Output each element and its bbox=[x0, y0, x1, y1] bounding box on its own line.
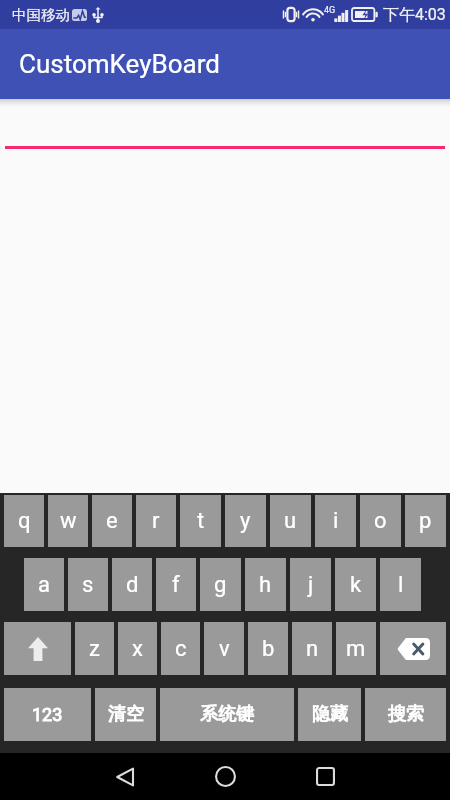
staticText: 下午4:03 bbox=[383, 5, 446, 25]
staticText: 隐藏 bbox=[312, 703, 348, 726]
staticText: s bbox=[82, 572, 94, 598]
staticText: t bbox=[197, 508, 205, 534]
staticText: i bbox=[333, 508, 339, 534]
staticText: 4G bbox=[324, 5, 336, 16]
staticText: 清空 bbox=[108, 703, 144, 726]
staticText: h bbox=[259, 572, 272, 598]
staticText: w bbox=[60, 508, 77, 534]
button[interactable]: k bbox=[335, 558, 376, 611]
button[interactable]: h bbox=[245, 558, 286, 611]
button[interactable]: p bbox=[405, 495, 446, 547]
staticText: 123 bbox=[32, 704, 63, 725]
staticText: r bbox=[152, 508, 160, 534]
button[interactable]: n bbox=[292, 622, 332, 675]
staticText: n bbox=[306, 636, 319, 662]
staticText: k bbox=[350, 572, 362, 598]
button[interactable]: y bbox=[225, 495, 266, 547]
button[interactable]: m bbox=[336, 622, 376, 675]
staticText: v bbox=[219, 636, 230, 662]
staticText: b bbox=[262, 636, 275, 662]
button[interactable]: 隐藏 bbox=[298, 688, 361, 741]
staticText: z bbox=[89, 636, 100, 662]
button[interactable]: Home bbox=[201, 753, 249, 800]
staticText: u bbox=[284, 508, 297, 534]
staticText: e bbox=[106, 508, 118, 534]
staticText: d bbox=[126, 572, 139, 598]
staticText: CustomKeyBoard bbox=[19, 49, 220, 79]
button[interactable]: 搜索 bbox=[365, 688, 446, 741]
button[interactable]: s bbox=[68, 558, 108, 611]
button[interactable]: q bbox=[4, 495, 44, 547]
button[interactable]: c bbox=[161, 622, 200, 675]
button[interactable]: i bbox=[315, 495, 356, 547]
button[interactable]: CustomKeyBoard bbox=[0, 29, 450, 99]
staticText: 系统键 bbox=[200, 703, 254, 726]
button[interactable]: v bbox=[204, 622, 244, 675]
button[interactable]: t bbox=[180, 495, 221, 547]
staticText: c bbox=[175, 636, 187, 662]
staticText: a bbox=[38, 572, 50, 598]
button[interactable]: g bbox=[200, 558, 241, 611]
staticText: f bbox=[172, 572, 180, 598]
button[interactable]: 系统键 bbox=[160, 688, 294, 741]
button[interactable]: e bbox=[92, 495, 132, 547]
staticText: g bbox=[214, 572, 227, 598]
button[interactable]: x bbox=[118, 622, 157, 675]
button[interactable]: a bbox=[24, 558, 64, 611]
staticText: j bbox=[308, 572, 314, 598]
staticText: 搜索 bbox=[388, 703, 424, 726]
button[interactable]: d bbox=[112, 558, 152, 611]
button[interactable]: u bbox=[270, 495, 311, 547]
button[interactable]: b bbox=[248, 622, 288, 675]
staticText: y bbox=[240, 508, 251, 534]
button[interactable]: w bbox=[48, 495, 88, 547]
button[interactable]: f bbox=[156, 558, 196, 611]
button[interactable]: l bbox=[380, 558, 421, 611]
button[interactable]: z bbox=[75, 622, 114, 675]
button[interactable]: Shift bbox=[4, 622, 71, 675]
staticText: q bbox=[18, 508, 31, 534]
button[interactable]: j bbox=[290, 558, 331, 611]
button[interactable]: 123 bbox=[4, 688, 91, 741]
staticText: l bbox=[398, 572, 404, 598]
button[interactable]: Back bbox=[101, 753, 149, 800]
button[interactable]: Backspace bbox=[380, 622, 446, 675]
button[interactable]: Recents bbox=[301, 753, 349, 800]
staticText: x bbox=[132, 636, 143, 662]
staticText: p bbox=[419, 508, 432, 534]
staticText: 中国移动 bbox=[12, 6, 70, 24]
button[interactable]: r bbox=[136, 495, 176, 547]
staticText: o bbox=[374, 508, 387, 534]
button[interactable]: o bbox=[360, 495, 401, 547]
staticText: m bbox=[346, 636, 366, 662]
button[interactable]: 清空 bbox=[95, 688, 156, 741]
